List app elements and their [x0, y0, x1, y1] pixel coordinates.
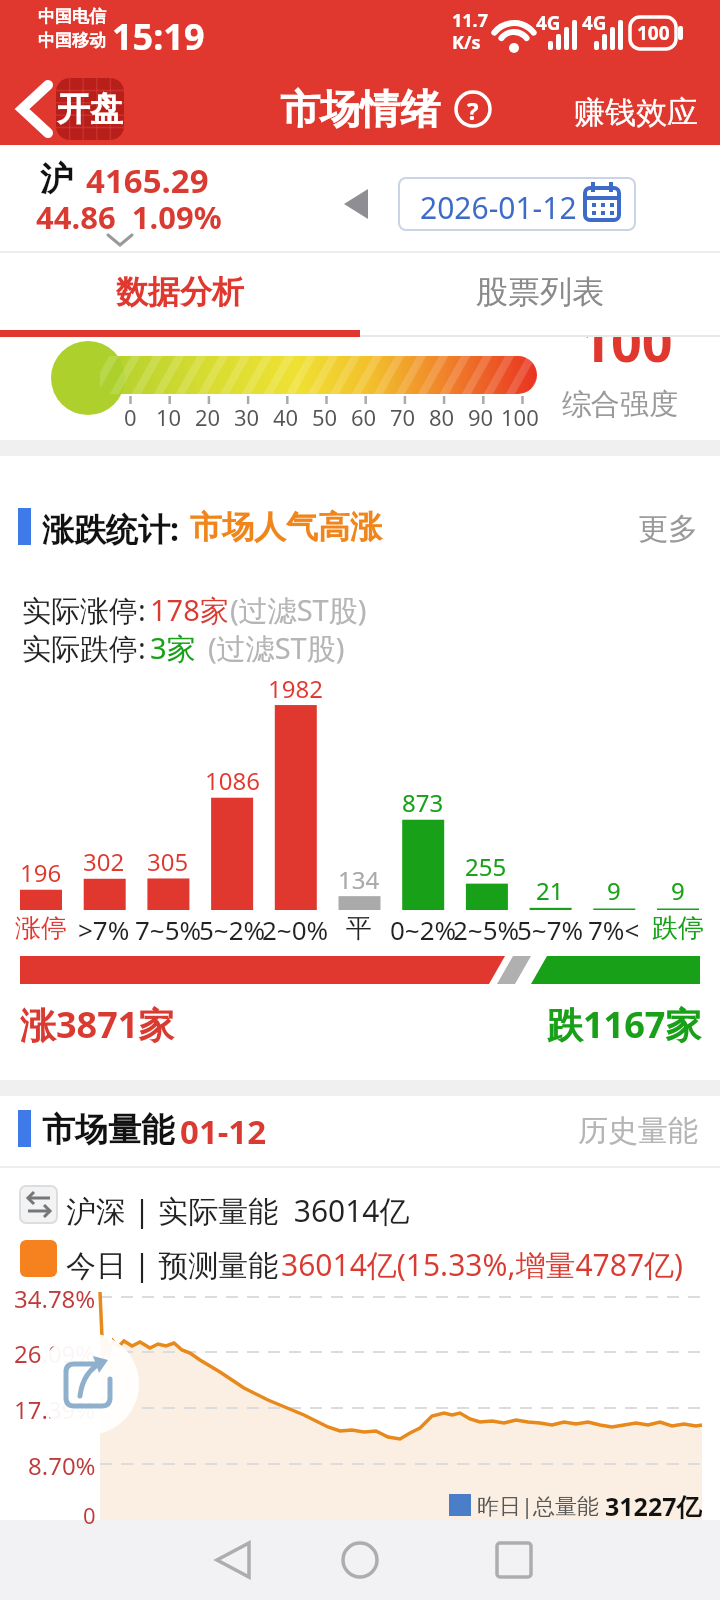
button[interactable]: [300, 1525, 420, 1595]
staticText: 40: [273, 402, 299, 428]
staticText: 平: [346, 912, 372, 944]
staticText: 1086: [205, 764, 260, 794]
staticText: 实际跌停:: [22, 628, 146, 668]
staticText: 0: [83, 1500, 96, 1526]
staticText: 60: [351, 402, 377, 428]
staticText: 305: [147, 845, 189, 875]
button[interactable]: 赚钱效应: [574, 93, 698, 132]
staticText: 市场人气高涨: [190, 507, 382, 547]
staticText: 涨停: [15, 912, 67, 944]
button[interactable]: 数据分析: [0, 253, 360, 330]
staticText: 9: [671, 874, 685, 904]
staticText: 股票列表: [476, 272, 604, 312]
staticText: 涨跌统计:: [42, 507, 179, 551]
staticText: 8.70%: [28, 1449, 96, 1479]
staticText: 实际涨停:: [22, 590, 146, 630]
staticText: 0~2%: [390, 912, 457, 944]
staticText: 34.78%: [14, 1282, 96, 1312]
staticText: 9: [607, 874, 621, 904]
staticText: 44.86 1.09%: [36, 196, 222, 238]
staticText: 中国电信: [38, 6, 106, 27]
staticText: 302: [83, 845, 125, 875]
staticText: 5~7%: [517, 912, 584, 944]
staticText: 跌1167家: [547, 1000, 702, 1044]
staticText: 21: [536, 874, 564, 904]
button[interactable]: [170, 1525, 290, 1595]
staticText: 873: [402, 786, 444, 816]
staticText: 30: [234, 402, 260, 428]
staticText: 31227亿: [605, 1489, 702, 1521]
staticText: 90: [468, 402, 494, 428]
button[interactable]: 历史量能: [578, 1112, 698, 1150]
staticText: 3家: [150, 628, 196, 668]
button[interactable]: [10, 80, 60, 140]
staticText: 20: [195, 402, 221, 428]
staticText: 15:19: [112, 12, 205, 61]
staticText: 综合强度: [562, 386, 678, 423]
staticText: 市场量能: [42, 1109, 174, 1151]
staticText: 4165.29: [86, 158, 209, 203]
staticText: 5~2%: [199, 912, 266, 944]
staticText: 2~0%: [262, 912, 329, 944]
staticText: 4G: [582, 10, 607, 36]
staticText: 涨3871家: [20, 1000, 175, 1049]
staticText: 中国移动: [38, 30, 106, 51]
staticText: 100: [580, 337, 673, 378]
staticText: 70: [390, 402, 416, 428]
staticText: 80: [429, 402, 455, 428]
staticText: 255: [465, 850, 507, 880]
staticText: 01-12: [180, 1109, 267, 1154]
staticText: 1982: [268, 672, 323, 702]
staticText: 开盘: [57, 88, 123, 130]
staticText: 10: [156, 402, 182, 428]
staticText: 昨日|总量能: [477, 1490, 605, 1520]
staticText: K/s: [452, 30, 481, 55]
staticText: 今日 | 预测量能: [66, 1244, 279, 1285]
staticText: >7%: [78, 912, 130, 944]
staticText: 50: [312, 402, 338, 428]
staticText: 沪: [40, 158, 73, 200]
staticText: 100: [637, 20, 670, 46]
button[interactable]: [440, 1525, 560, 1595]
button[interactable]: 开盘: [50, 84, 130, 134]
staticText: 0: [124, 402, 137, 428]
staticText: 沪深 | 实际量能 36014亿: [66, 1190, 410, 1231]
staticText: 26.09%: [14, 1337, 96, 1367]
staticText: (过滤ST股): [230, 590, 367, 630]
staticText: 市场情绪: [280, 84, 440, 134]
staticText: 数据分析: [116, 272, 244, 312]
button[interactable]: [37, 1333, 139, 1435]
button[interactable]: 股票列表: [360, 253, 720, 330]
staticText: ?: [467, 94, 479, 124]
staticText: 100: [501, 402, 539, 428]
staticText: 36014亿(15.33%,增量4787亿): [281, 1244, 684, 1285]
staticText: 跌停: [652, 912, 704, 944]
staticText: 11.7: [452, 8, 488, 33]
button[interactable]: 更多: [638, 510, 698, 548]
staticText: 4G: [536, 10, 561, 36]
staticText: 134: [338, 863, 380, 893]
button[interactable]: 2026-01-12: [398, 177, 636, 231]
staticText: 7%<: [588, 912, 640, 944]
staticText: 17.39%: [14, 1393, 96, 1423]
staticText: 7~5%: [135, 912, 202, 944]
staticText: 2~5%: [453, 912, 520, 944]
staticText: 196: [20, 856, 62, 886]
staticText: 178家: [150, 590, 229, 630]
staticText: (过滤ST股): [208, 628, 345, 668]
staticText: 2026-01-12: [420, 187, 577, 228]
